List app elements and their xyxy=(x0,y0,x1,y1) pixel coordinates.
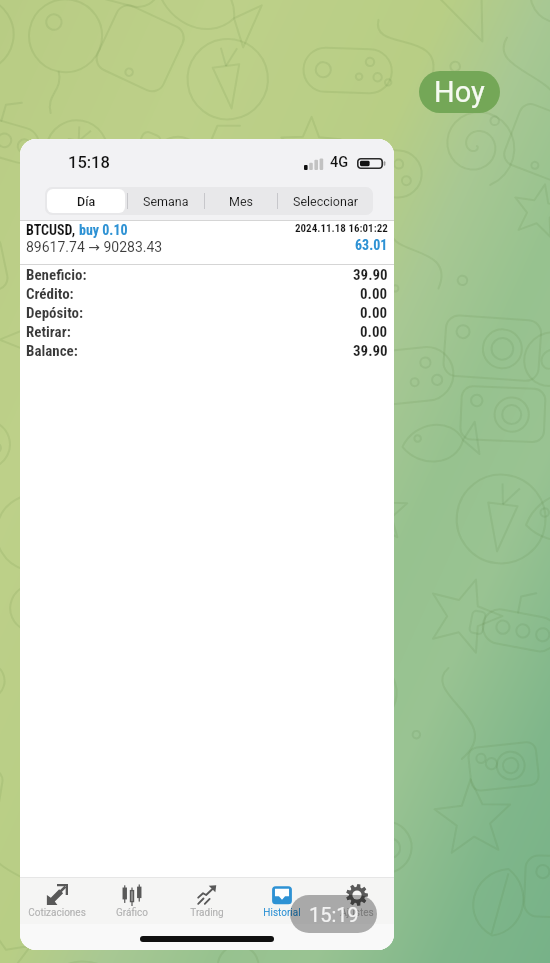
button[interactable]: Historial xyxy=(244,878,319,924)
staticText: Depósito: xyxy=(26,304,84,322)
staticText: Crédito: xyxy=(26,285,74,303)
staticText: 89617.74 → 90283.43 xyxy=(26,239,163,255)
button[interactable]: Hoy xyxy=(419,71,500,113)
staticText: Trading xyxy=(190,907,224,919)
button[interactable]: Semana xyxy=(130,189,202,213)
staticText: 4G xyxy=(330,154,349,171)
staticText: 2024.11.18 16:01:22 xyxy=(295,222,388,235)
staticText: Semana xyxy=(143,194,189,209)
staticText: 15:18 xyxy=(68,153,110,172)
staticText: Día xyxy=(77,194,96,209)
button[interactable]: Seleccionar xyxy=(280,189,371,213)
staticText: Hoy xyxy=(434,75,485,109)
staticText: 63.01 xyxy=(355,237,388,253)
button[interactable]: Mes xyxy=(207,189,275,213)
button[interactable]: Ajustes xyxy=(319,878,394,924)
staticText: Historial xyxy=(263,907,301,919)
staticText: 0.00 xyxy=(360,323,388,341)
staticText: Beneficio: xyxy=(26,266,87,284)
staticText: 15:19 xyxy=(309,903,359,926)
staticText: Cotizaciones xyxy=(28,907,86,919)
staticText: buy 0.10 xyxy=(79,222,128,238)
staticText: 0.00 xyxy=(360,285,388,303)
staticText: Mes xyxy=(229,194,253,209)
staticText: Retirar: xyxy=(26,323,71,341)
staticText: BTCUSD, xyxy=(26,222,79,238)
button[interactable]: BTCUSD, xyxy=(20,220,394,265)
button[interactable]: Día xyxy=(47,189,125,213)
staticText: 39.90 xyxy=(353,342,388,360)
button[interactable]: Trading xyxy=(169,878,244,924)
staticText: Seleccionar xyxy=(293,194,358,209)
staticText: Ajustes xyxy=(340,907,374,919)
staticText: 39.90 xyxy=(353,266,388,284)
staticText: 0.00 xyxy=(360,304,388,322)
button[interactable]: Gráfico xyxy=(94,878,169,924)
button[interactable]: Cotizaciones xyxy=(20,878,94,924)
staticText: Balance: xyxy=(26,342,78,360)
staticText: Gráfico xyxy=(116,907,148,919)
